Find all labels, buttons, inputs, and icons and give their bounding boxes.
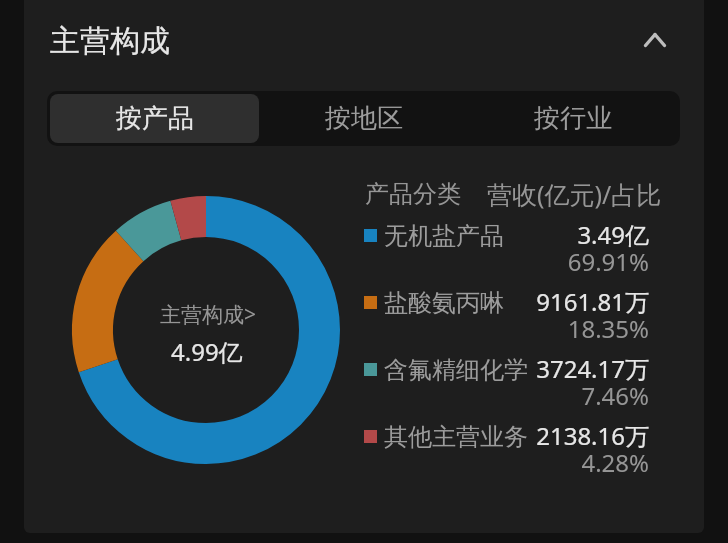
- button[interactable]: 按行业: [468, 94, 677, 143]
- staticText: 其他主营业务: [384, 422, 528, 452]
- staticText: 4.99亿: [171, 335, 243, 368]
- button[interactable]: 其他主营业务: [360, 422, 649, 486]
- staticText: 按产品: [116, 102, 194, 135]
- staticText: 69.91%: [360, 245, 649, 278]
- button[interactable]: 按产品: [50, 94, 259, 143]
- staticText: 产品分类: [365, 179, 461, 209]
- staticText: 按行业: [534, 102, 612, 135]
- button[interactable]: 盐酸氨丙啉: [360, 288, 649, 352]
- staticText: 9161.81万: [360, 285, 649, 318]
- staticText: 主营构成>: [160, 300, 257, 329]
- staticText: 7.46%: [360, 379, 649, 412]
- staticText: 3724.17万: [360, 352, 649, 385]
- staticText: 按地区: [325, 102, 403, 135]
- staticText: 2138.16万: [360, 419, 649, 452]
- staticText: 18.35%: [360, 312, 649, 345]
- staticText: 含氟精细化学: [384, 355, 528, 385]
- staticText: 主营构成: [50, 22, 170, 60]
- staticText: 4.28%: [360, 446, 649, 479]
- button[interactable]: 无机盐产品: [360, 221, 649, 285]
- staticText: 3.49亿: [360, 218, 649, 251]
- button[interactable]: Collapse section: [629, 14, 681, 66]
- staticText: 营收(亿元)/占比: [487, 177, 662, 211]
- staticText: 盐酸氨丙啉: [384, 288, 504, 318]
- button[interactable]: 主营构成>: [144, 294, 269, 374]
- button[interactable]: 主营构成: [40, 12, 190, 62]
- staticText: 无机盐产品: [384, 221, 504, 251]
- button[interactable]: 按地区: [259, 94, 468, 143]
- button[interactable]: 含氟精细化学: [360, 355, 649, 419]
